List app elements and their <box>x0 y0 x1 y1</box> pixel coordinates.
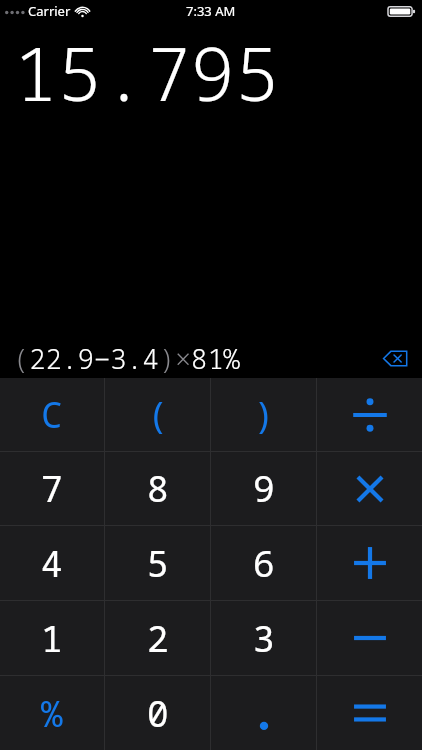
button[interactable]: ) <box>211 378 316 451</box>
button[interactable]: Backspace <box>378 341 412 375</box>
button[interactable]: ( <box>105 378 210 451</box>
button[interactable]: 1 <box>0 601 104 675</box>
staticText: % <box>41 689 63 738</box>
staticText: 1 <box>41 614 63 663</box>
staticText: 15.795 <box>13 22 280 106</box>
button[interactable]: Multiply <box>317 452 422 525</box>
button[interactable]: 0 <box>105 676 210 750</box>
staticText: ( <box>147 390 169 439</box>
staticText: Carrier <box>28 2 71 20</box>
button[interactable]: % <box>0 676 104 750</box>
button[interactable]: Decimal point <box>211 676 316 750</box>
button[interactable]: 8 <box>105 452 210 525</box>
staticText: 6 <box>253 539 275 588</box>
button[interactable]: 2 <box>105 601 210 675</box>
button[interactable]: 3 <box>211 601 316 675</box>
button[interactable]: Divide <box>317 378 422 451</box>
button[interactable]: 4 <box>0 526 104 600</box>
staticText: 7 <box>41 464 63 513</box>
button[interactable]: C <box>0 378 104 451</box>
staticText: ) <box>253 390 275 439</box>
button[interactable]: Equals <box>317 676 422 750</box>
button[interactable]: 9 <box>211 452 316 525</box>
staticText: 0 <box>147 689 169 738</box>
button[interactable]: Subtract <box>317 601 422 675</box>
staticText: 5 <box>147 539 169 588</box>
staticText: 2 <box>147 614 169 663</box>
staticText: (22.9−3.4)×81% <box>13 340 240 377</box>
button[interactable]: Add <box>317 526 422 600</box>
button[interactable]: 5 <box>105 526 210 600</box>
button[interactable]: 6 <box>211 526 316 600</box>
staticText: 7:33 AM <box>186 2 236 20</box>
button[interactable]: 7 <box>0 452 104 525</box>
staticText: C <box>41 390 63 439</box>
staticText: 9 <box>253 464 275 513</box>
staticText: 8 <box>147 464 169 513</box>
staticText: 3 <box>253 614 275 663</box>
staticText: 4 <box>41 539 63 588</box>
